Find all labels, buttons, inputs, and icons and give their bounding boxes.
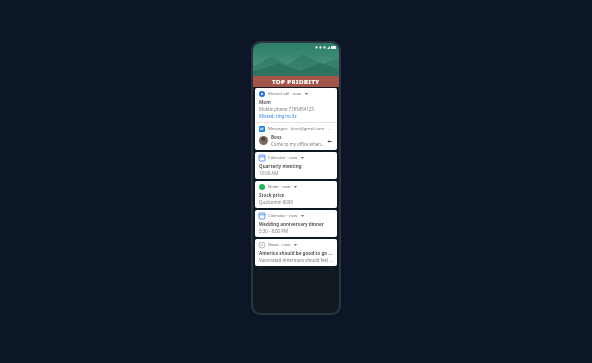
staticText: Mom: [259, 99, 271, 105]
staticText: Qualcomm $080: [259, 199, 293, 205]
staticText: Missed, ring no 3x: [259, 113, 297, 119]
button[interactable]: Node · now: [255, 181, 337, 208]
staticText: Node · now: [268, 184, 291, 190]
staticText: Missed call · now: [268, 91, 302, 97]
staticText: Quarterly meeting: [259, 163, 302, 169]
staticText: Calendar · now: [268, 155, 298, 161]
button[interactable]: News · now: [255, 239, 337, 266]
button[interactable]: Messages · boss@gmail.com · 1 min: [255, 123, 337, 150]
staticText: TOP PRIORITY: [272, 78, 320, 86]
staticText: America should be good to go for Hallowe…: [259, 250, 333, 256]
button[interactable]: Missed call · now: [255, 88, 337, 122]
staticText: Mobile phone 7765454123: [259, 106, 314, 112]
staticText: 5:30 - 8:00 PM: [259, 228, 288, 234]
button[interactable]: Calendar · now: [255, 210, 337, 237]
staticText: Come to my office when you get...: [271, 141, 325, 147]
staticText: Boss: [271, 134, 282, 140]
staticText: Vaccinated Americans should feel ...: [259, 257, 333, 263]
staticText: Messages · boss@gmail.com · 1 min: [268, 126, 333, 132]
staticText: Wedding anniversary dinner: [259, 221, 324, 227]
button[interactable]: Calendar · now: [255, 152, 337, 179]
staticText: Stock price: [259, 192, 285, 198]
staticText: News · now: [268, 242, 291, 248]
button[interactable]: Reply: [325, 137, 333, 145]
staticText: 10:00 AM: [259, 170, 279, 176]
staticText: Calendar · now: [268, 213, 298, 219]
